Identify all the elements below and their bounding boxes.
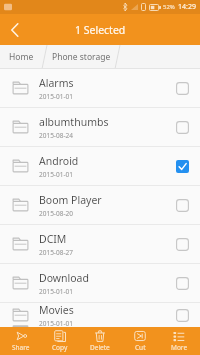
button[interactable]: Boom Player [0,186,200,225]
button[interactable]: Movies [0,303,200,327]
staticText: 2015-01-01 [39,287,73,296]
button[interactable]: Cut [121,327,159,355]
staticText: Home [9,51,34,63]
staticText: Copy [52,343,68,352]
staticText: 2015-08-24 [39,131,73,140]
staticText: 2015-08-20 [39,209,73,218]
staticText: 2015-08-27 [39,248,73,257]
button[interactable]: Not selected [174,236,190,252]
button[interactable]: Back [0,15,30,45]
staticText: More [171,343,188,352]
staticText: DCIM [39,232,67,246]
button[interactable]: Not selected [174,80,190,96]
button[interactable]: More [160,327,198,355]
button[interactable]: Copy [41,327,79,355]
button[interactable]: Selected [174,158,190,174]
staticText: Android [39,154,79,168]
staticText: 14:29 [178,2,196,12]
staticText: albumthumbs [39,115,109,129]
button[interactable]: Not selected [174,197,190,213]
staticText: Movies [39,303,74,317]
button[interactable]: Not selected [174,307,190,323]
staticText: Download [39,271,89,285]
button[interactable]: Home [0,45,42,69]
button[interactable]: Alarms [0,69,200,108]
button[interactable]: albumthumbs [0,108,200,147]
button[interactable]: Share [2,327,40,355]
button[interactable]: Download [0,264,200,303]
staticText: 1 Selected [75,23,126,37]
button[interactable]: Delete [81,327,119,355]
staticText: Boom Player [39,193,102,207]
staticText: 2015-01-01 [39,319,73,327]
staticText: Alarms [39,76,74,90]
staticText: Cut [135,343,146,352]
staticText: Delete [90,343,110,352]
button[interactable]: Not selected [174,119,190,135]
staticText: 2015-01-01 [39,92,73,101]
button[interactable]: Phone storage [47,45,115,69]
staticText: 2015-01-01 [39,170,73,179]
button[interactable]: DCIM [0,225,200,264]
staticText: 52% [163,3,175,11]
button[interactable]: Android [0,147,200,186]
staticText: Phone storage [52,51,111,63]
staticText: Share [12,343,30,352]
button[interactable]: Not selected [174,275,190,291]
